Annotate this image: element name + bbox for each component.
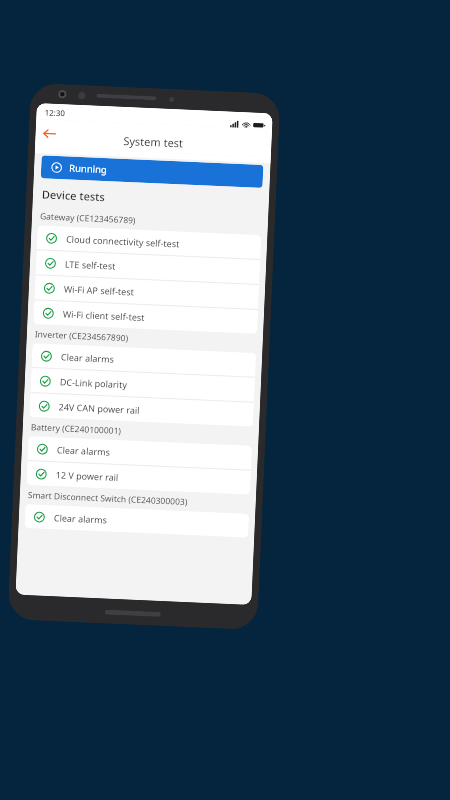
staticText: Clear alarms bbox=[54, 511, 108, 525]
staticText: Clear alarms bbox=[61, 350, 115, 365]
staticText: DC-Link polarity bbox=[60, 375, 128, 390]
staticText: Inverter (CE234567890) bbox=[35, 328, 129, 344]
button[interactable]: Clear alarms bbox=[24, 504, 249, 538]
staticText: Device tests bbox=[42, 186, 105, 204]
button[interactable]: Wi-Fi client self-test bbox=[33, 300, 258, 334]
button[interactable]: Back bbox=[40, 124, 59, 143]
staticText: Wi-Fi client self-test bbox=[62, 307, 145, 323]
button[interactable]: DC-Link polarity bbox=[30, 368, 255, 402]
button[interactable]: Cloud connectivity self-test bbox=[37, 225, 261, 259]
staticText: Smart Disconnect Switch (CE240300003) bbox=[28, 489, 188, 508]
staticText: Gateway (CE123456789) bbox=[40, 210, 136, 226]
staticText: 12 V power rail bbox=[55, 468, 119, 483]
staticText: LTE self-test bbox=[65, 257, 116, 272]
button[interactable]: Clear alarms bbox=[27, 436, 252, 470]
button[interactable]: 24V CAN power rail bbox=[29, 393, 254, 427]
staticText: System test bbox=[123, 133, 184, 150]
button[interactable]: Running bbox=[41, 155, 263, 188]
staticText: Running bbox=[69, 162, 107, 176]
staticText: Cloud connectivity self-test bbox=[66, 232, 180, 249]
button[interactable]: Clear alarms bbox=[31, 343, 256, 377]
staticText: Clear alarms bbox=[57, 443, 111, 458]
button[interactable]: 12 V power rail bbox=[26, 461, 251, 495]
button[interactable]: LTE self-test bbox=[35, 250, 260, 284]
staticText: 12:30 bbox=[44, 106, 66, 118]
staticText: 24V CAN power rail bbox=[58, 400, 140, 416]
staticText: Wi-Fi AP self-test bbox=[64, 282, 135, 297]
button[interactable]: Wi-Fi AP self-test bbox=[34, 275, 259, 309]
staticText: Battery (CE240100001) bbox=[30, 421, 122, 437]
